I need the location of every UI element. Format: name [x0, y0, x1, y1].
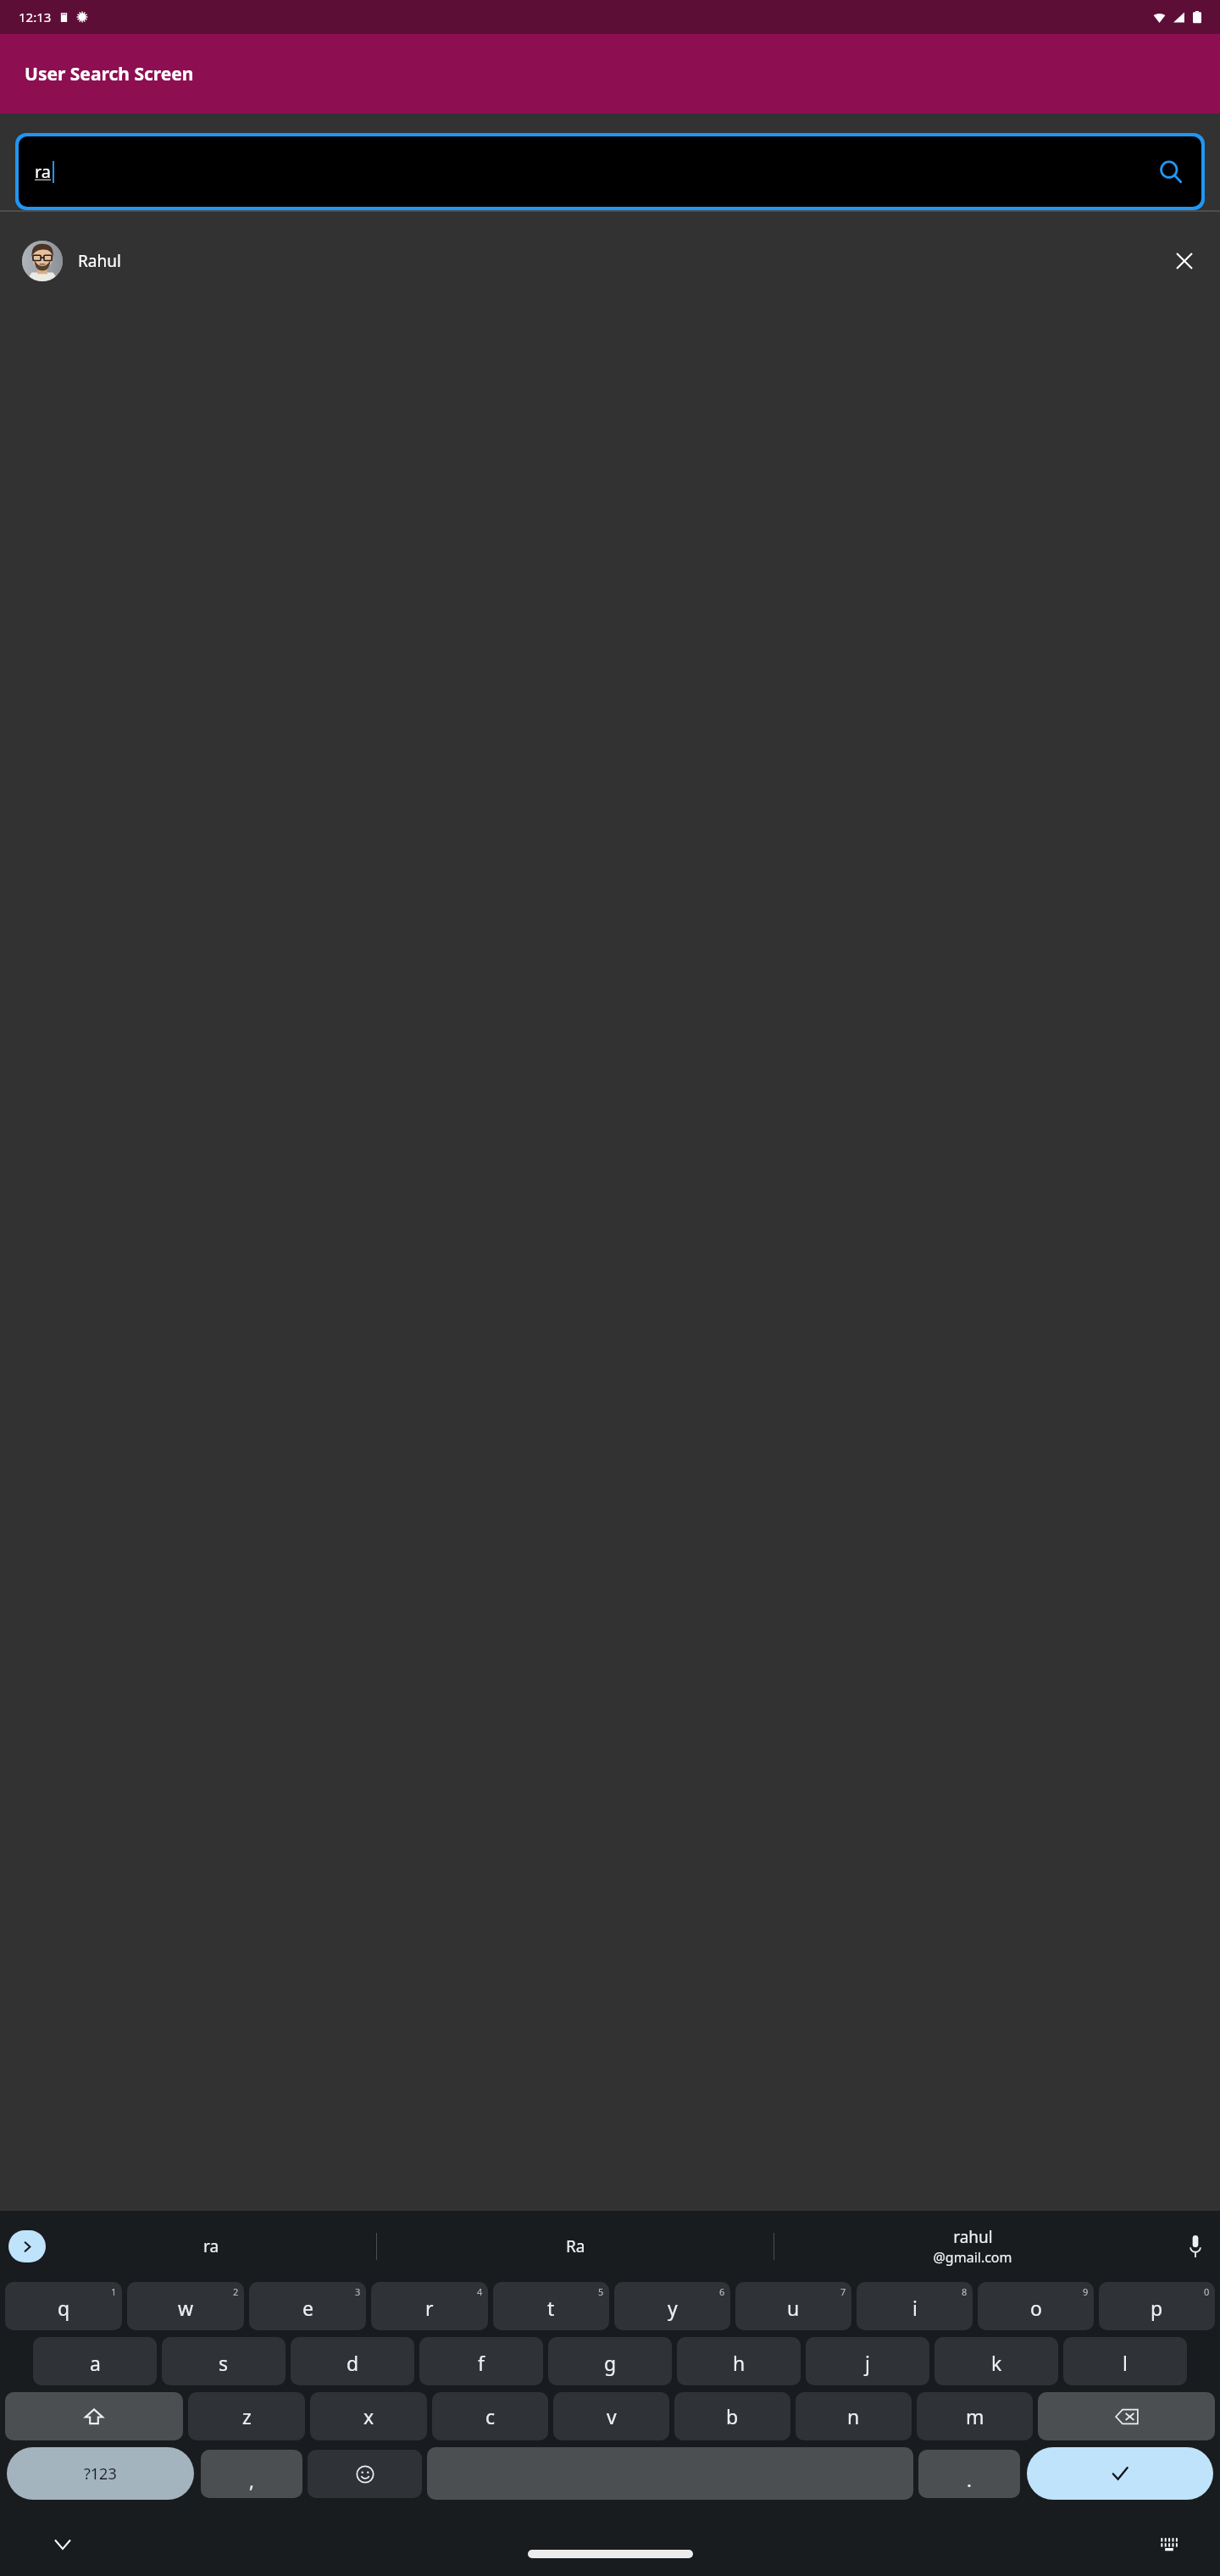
staticText: @gmail.com: [933, 2248, 1012, 2267]
button[interactable]: t: [493, 2282, 609, 2330]
button[interactable]: ,: [201, 2450, 302, 2498]
staticText: j: [865, 2350, 870, 2376]
staticText: m: [966, 2403, 984, 2429]
staticText: a: [90, 2350, 101, 2376]
button[interactable]: d: [291, 2337, 414, 2385]
staticText: Ra: [566, 2235, 585, 2257]
button[interactable]: e: [249, 2282, 366, 2330]
staticText: ?123: [84, 2463, 117, 2484]
staticText: ,: [249, 2468, 254, 2493]
staticText: 4: [477, 2285, 483, 2298]
button[interactable]: y: [614, 2282, 730, 2330]
staticText: 5: [598, 2285, 604, 2298]
button[interactable]: j: [806, 2337, 929, 2385]
button[interactable]: Switch keyboard: [1151, 2525, 1188, 2562]
button[interactable]: o: [978, 2282, 1094, 2330]
staticText: User Search Screen: [25, 62, 194, 86]
staticText: v: [607, 2403, 617, 2429]
staticText: x: [363, 2403, 374, 2429]
button[interactable]: Rahul: [0, 212, 1220, 309]
button[interactable]: w: [127, 2282, 244, 2330]
staticText: r: [425, 2295, 434, 2321]
button[interactable]: r: [371, 2282, 488, 2330]
button[interactable]: n: [796, 2392, 912, 2440]
staticText: o: [1030, 2295, 1042, 2321]
staticText: l: [1123, 2350, 1128, 2376]
staticText: t: [547, 2295, 555, 2321]
button[interactable]: Ra: [377, 2211, 774, 2282]
button[interactable]: Shift: [5, 2392, 183, 2440]
staticText: 0: [1204, 2285, 1210, 2298]
button[interactable]: Space: [427, 2447, 913, 2500]
staticText: n: [847, 2403, 860, 2429]
staticText: z: [242, 2403, 252, 2429]
staticText: d: [347, 2350, 359, 2376]
button[interactable]: b: [674, 2392, 790, 2440]
button[interactable]: u: [735, 2282, 851, 2330]
staticText: p: [1151, 2295, 1163, 2321]
button[interactable]: Enter: [1027, 2447, 1213, 2500]
staticText: 9: [1083, 2285, 1089, 2298]
button[interactable]: Remove Rahul: [1161, 237, 1208, 285]
staticText: q: [58, 2295, 70, 2321]
button[interactable]: ?123: [7, 2447, 194, 2500]
staticText: e: [302, 2295, 313, 2321]
button[interactable]: ra: [19, 136, 1201, 207]
staticText: 1: [111, 2285, 117, 2298]
staticText: w: [178, 2295, 194, 2321]
staticText: .: [967, 2467, 972, 2492]
staticText: k: [991, 2350, 1002, 2376]
staticText: 7: [840, 2285, 846, 2298]
button[interactable]: Hide keyboard: [44, 2525, 81, 2562]
button[interactable]: ra: [46, 2211, 376, 2282]
staticText: rahul: [953, 2226, 993, 2248]
staticText: ra: [203, 2235, 219, 2257]
button[interactable]: rahul: [774, 2211, 1171, 2282]
button[interactable]: Voice input: [1171, 2211, 1220, 2282]
button[interactable]: Emoji: [308, 2450, 422, 2498]
button[interactable]: p: [1099, 2282, 1215, 2330]
button[interactable]: k: [934, 2337, 1058, 2385]
staticText: u: [787, 2295, 800, 2321]
button[interactable]: Expand toolbar: [8, 2230, 46, 2262]
button[interactable]: a: [33, 2337, 157, 2385]
staticText: 6: [719, 2285, 725, 2298]
button[interactable]: x: [310, 2392, 427, 2440]
staticText: 3: [355, 2285, 361, 2298]
staticText: y: [668, 2295, 678, 2321]
button[interactable]: v: [553, 2392, 669, 2440]
staticText: ra: [35, 160, 52, 183]
staticText: 12:13: [19, 8, 52, 25]
staticText: g: [604, 2350, 617, 2376]
button[interactable]: .: [918, 2450, 1020, 2498]
button[interactable]: c: [432, 2392, 548, 2440]
staticText: c: [485, 2403, 496, 2429]
button[interactable]: m: [917, 2392, 1033, 2440]
staticText: s: [219, 2350, 229, 2376]
staticText: i: [912, 2295, 918, 2321]
staticText: Rahul: [78, 250, 121, 272]
staticText: b: [726, 2403, 739, 2429]
button[interactable]: l: [1063, 2337, 1187, 2385]
button[interactable]: g: [548, 2337, 672, 2385]
button[interactable]: h: [677, 2337, 801, 2385]
button[interactable]: Backspace: [1038, 2392, 1215, 2440]
staticText: f: [478, 2350, 485, 2376]
button[interactable]: i: [857, 2282, 973, 2330]
button[interactable]: s: [162, 2337, 286, 2385]
staticText: h: [733, 2350, 746, 2376]
button[interactable]: f: [419, 2337, 543, 2385]
button[interactable]: z: [188, 2392, 305, 2440]
button[interactable]: q: [5, 2282, 122, 2330]
staticText: 8: [962, 2285, 968, 2298]
staticText: 2: [233, 2285, 239, 2298]
